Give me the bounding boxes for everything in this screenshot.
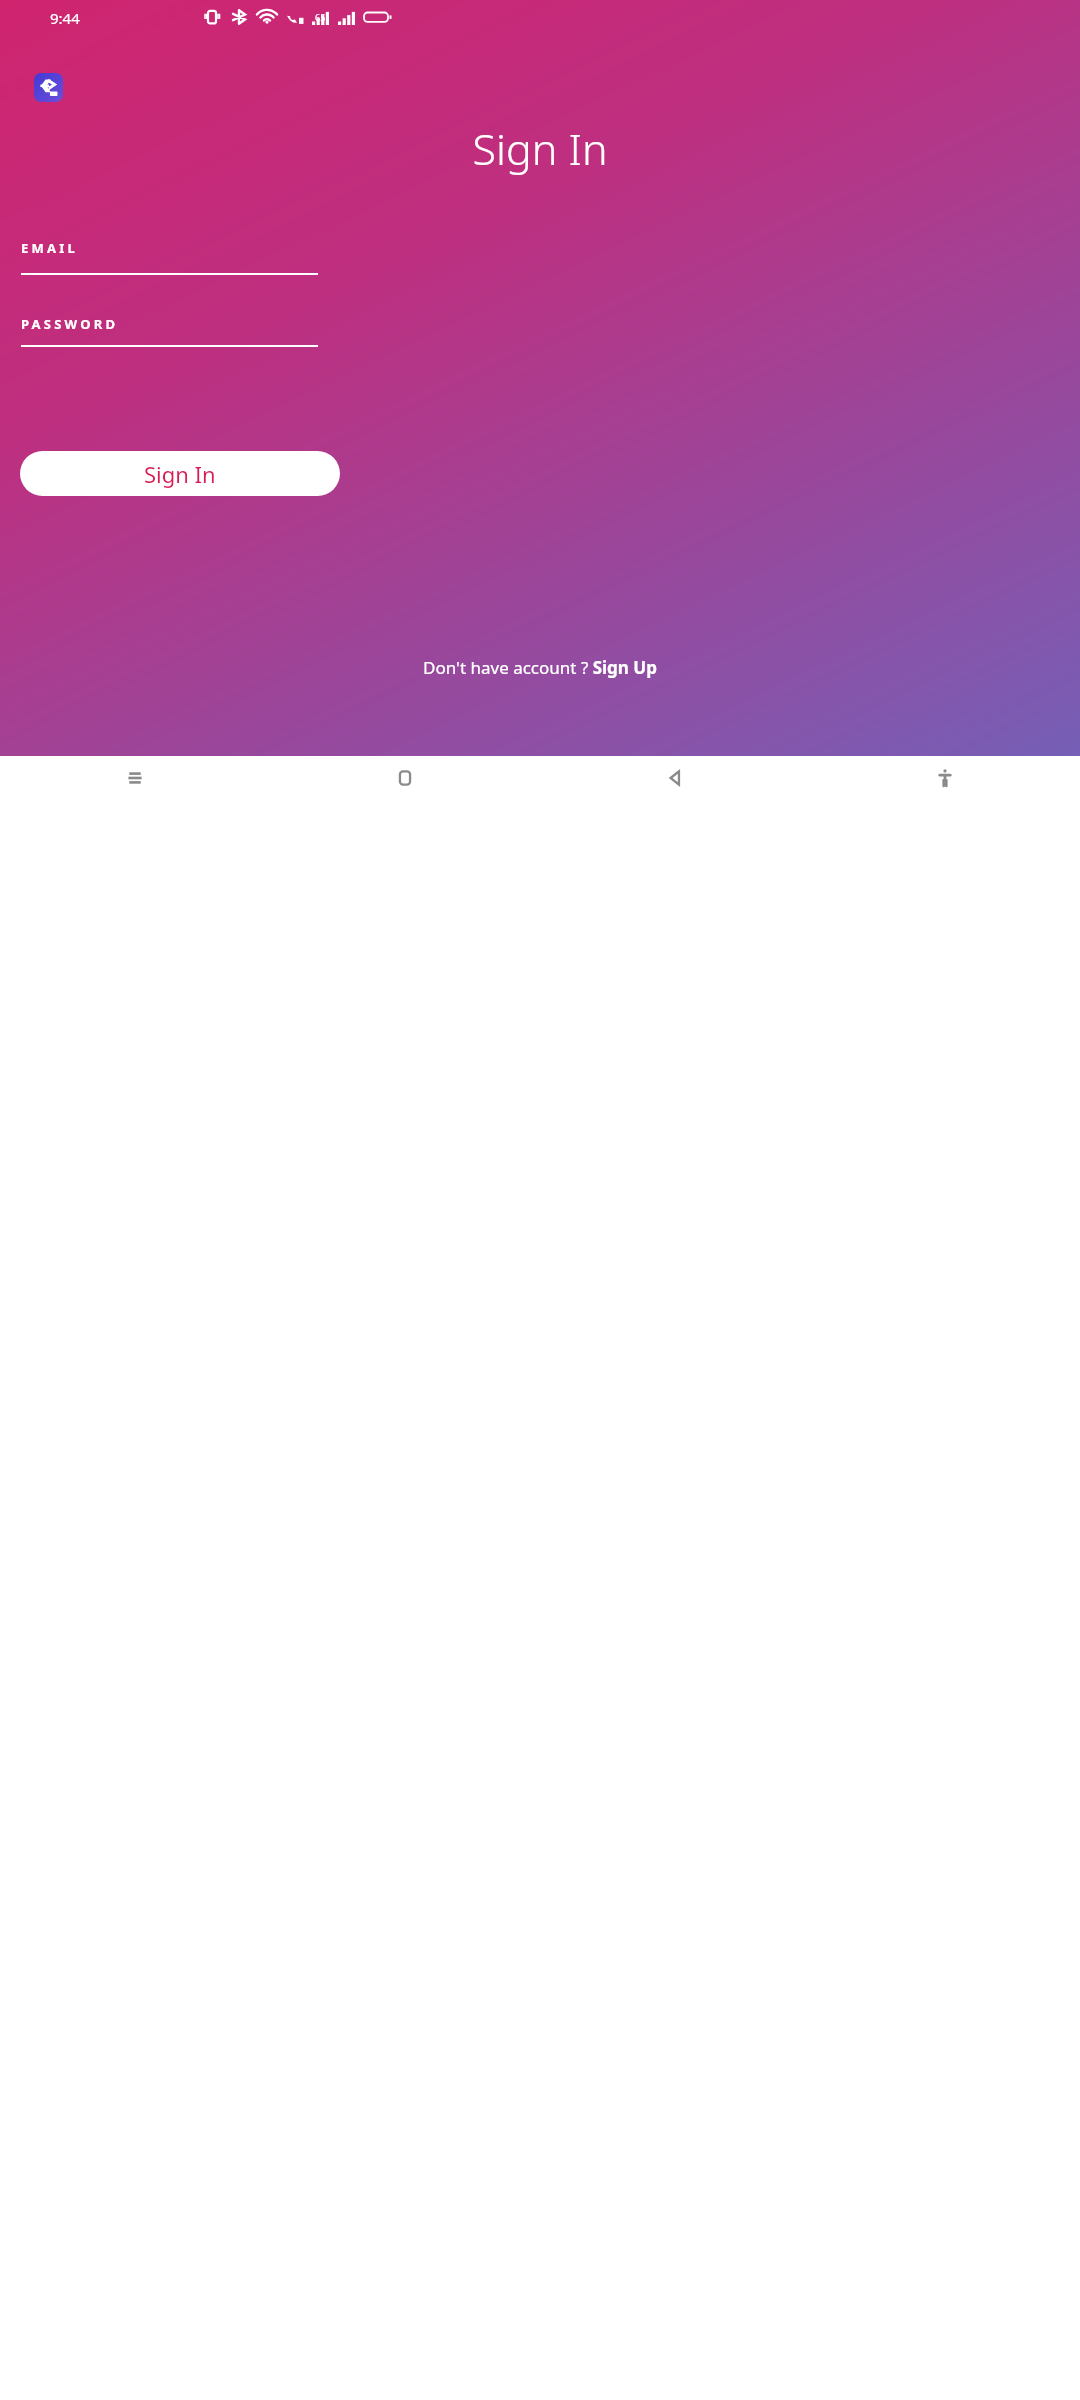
staticText: Don't have account ? Sign Up: [423, 656, 657, 679]
button[interactable]: PASSWORD: [21, 304, 339, 344]
staticText: 65: [315, 11, 326, 23]
button[interactable]: Sign In: [20, 451, 340, 496]
button[interactable]: Accessibility: [810, 756, 1080, 800]
staticText: 9:44: [50, 8, 80, 28]
button[interactable]: Home: [270, 756, 540, 800]
staticText: EMAIL: [21, 239, 78, 257]
button[interactable]: Don't have account ? Sign Up: [80, 656, 1000, 679]
button[interactable]: Back: [540, 756, 810, 800]
staticText: Sign In: [144, 459, 216, 489]
button[interactable]: EMAIL: [21, 228, 339, 268]
other: App logo: [34, 73, 63, 102]
staticText: Sign In: [0, 119, 1080, 178]
button[interactable]: Menu: [0, 756, 270, 800]
staticText: PASSWORD: [21, 315, 119, 333]
